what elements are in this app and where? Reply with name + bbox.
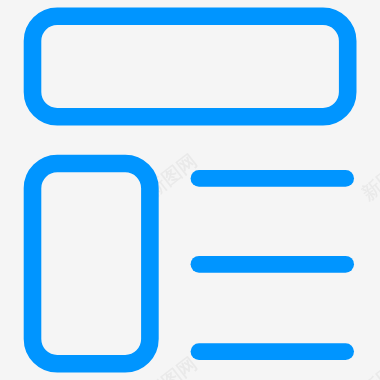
button[interactable]: First list item xyxy=(191,170,354,187)
button[interactable]: Header card xyxy=(24,7,357,125)
button[interactable]: Thumbnail xyxy=(24,155,159,373)
button[interactable]: Second list item xyxy=(191,256,354,273)
button[interactable]: Third list item xyxy=(191,343,354,360)
